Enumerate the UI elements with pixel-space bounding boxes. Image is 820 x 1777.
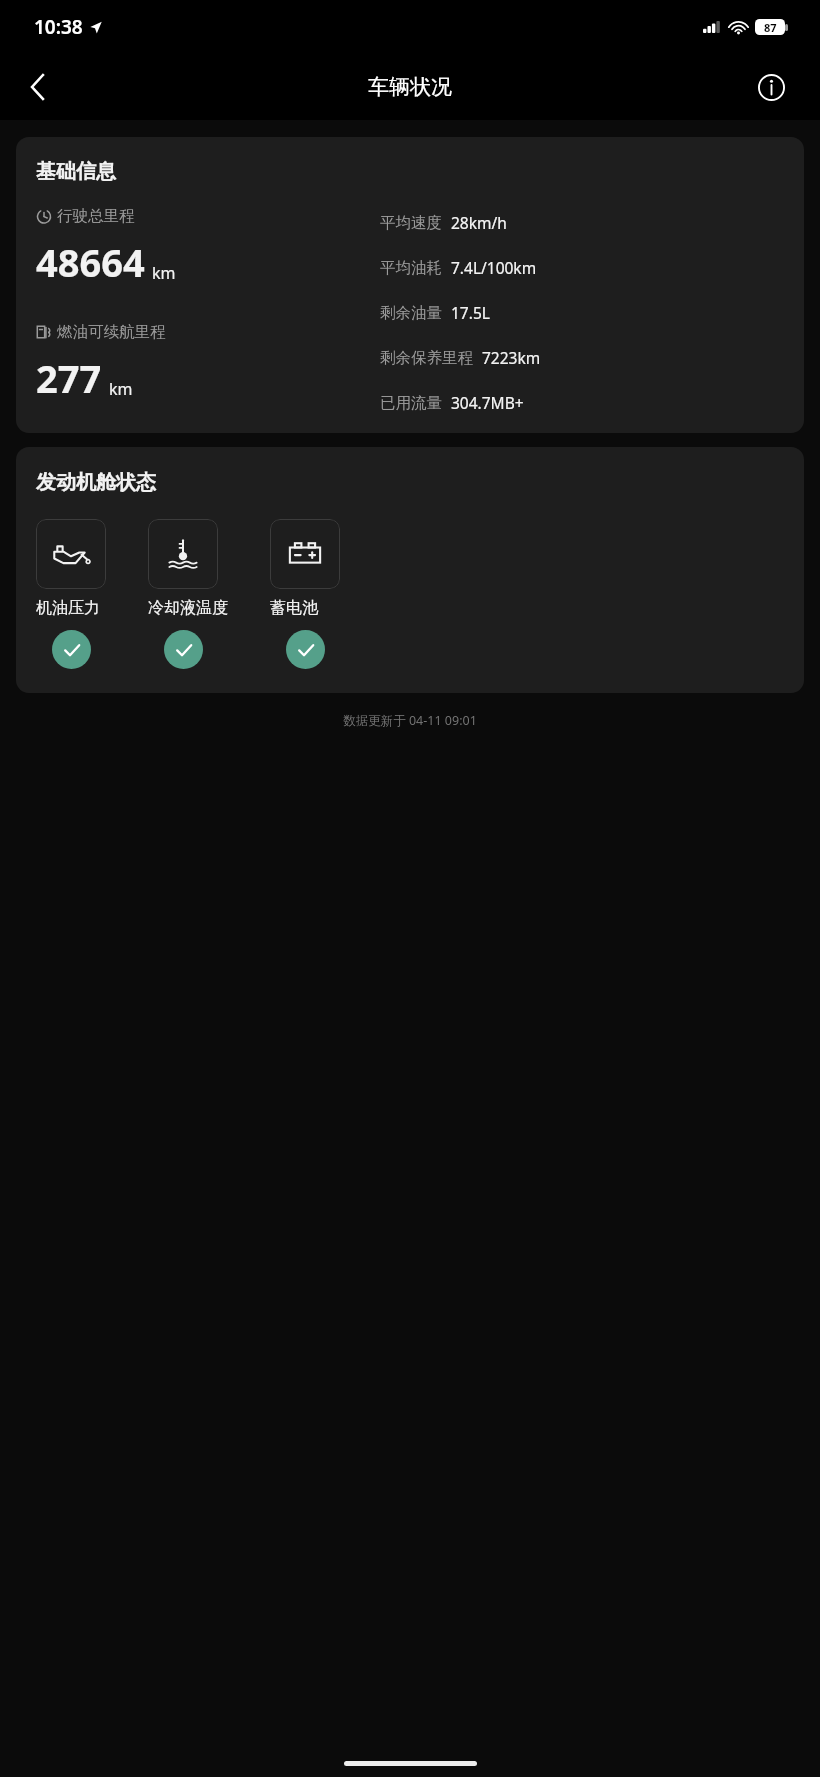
staticText: 28km/h xyxy=(451,212,507,233)
staticText: 48664 xyxy=(36,236,145,288)
staticText: 剩余油量 xyxy=(380,303,442,323)
button[interactable]: 机油压力 xyxy=(36,519,106,669)
staticText: 10:38 xyxy=(34,14,83,40)
staticText: 已用流量 xyxy=(380,393,442,413)
staticText: 平均油耗 xyxy=(380,258,442,278)
staticText: 277 xyxy=(36,352,102,404)
staticText: 304.7MB+ xyxy=(451,392,524,413)
staticText: 17.5L xyxy=(451,302,490,323)
button[interactable]: 基础信息 xyxy=(16,137,804,433)
staticText: 基础信息 xyxy=(36,159,116,184)
staticText: km xyxy=(109,378,133,400)
staticText: 87 xyxy=(764,20,777,35)
staticText: 剩余保养里程 xyxy=(380,348,473,368)
staticText: 数据更新于 04-11 09:01 xyxy=(0,712,820,729)
staticText: 机油压力 xyxy=(36,598,100,618)
button[interactable]: 冷却液温度 xyxy=(148,519,228,669)
staticText: 车辆状况 xyxy=(368,74,452,100)
button[interactable]: 蓄电池 xyxy=(270,519,340,669)
button[interactable]: Information xyxy=(749,65,793,109)
staticText: 7223km xyxy=(482,347,541,368)
button[interactable]: Back xyxy=(12,62,62,112)
staticText: 7.4L/100km xyxy=(451,257,537,278)
staticText: 行驶总里程 xyxy=(57,206,135,226)
staticText: 燃油可续航里程 xyxy=(57,322,166,342)
button[interactable]: 发动机舱状态 xyxy=(16,447,804,693)
staticText: 发动机舱状态 xyxy=(36,470,156,495)
staticText: km xyxy=(152,262,176,284)
staticText: 蓄电池 xyxy=(270,598,318,618)
staticText: 冷却液温度 xyxy=(148,598,228,618)
staticText: 平均速度 xyxy=(380,213,442,233)
